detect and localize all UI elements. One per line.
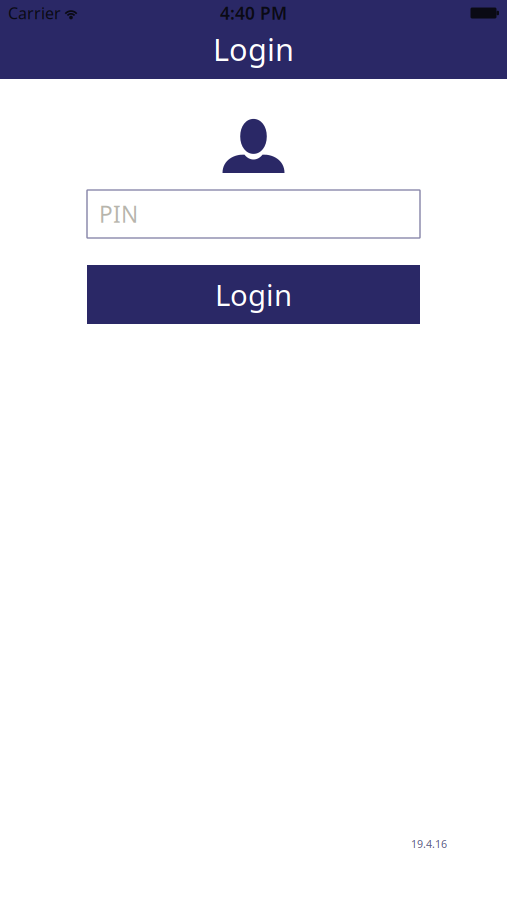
- staticText: 4:40 PM: [220, 1, 287, 24]
- staticText: Login: [213, 29, 294, 69]
- button[interactable]: PIN: [87, 190, 420, 238]
- staticText: PIN: [99, 199, 138, 229]
- staticText: 19.4.16: [411, 837, 447, 851]
- staticText: Carrier: [8, 2, 61, 24]
- staticText: Login: [215, 275, 292, 314]
- button[interactable]: Login: [87, 265, 420, 324]
